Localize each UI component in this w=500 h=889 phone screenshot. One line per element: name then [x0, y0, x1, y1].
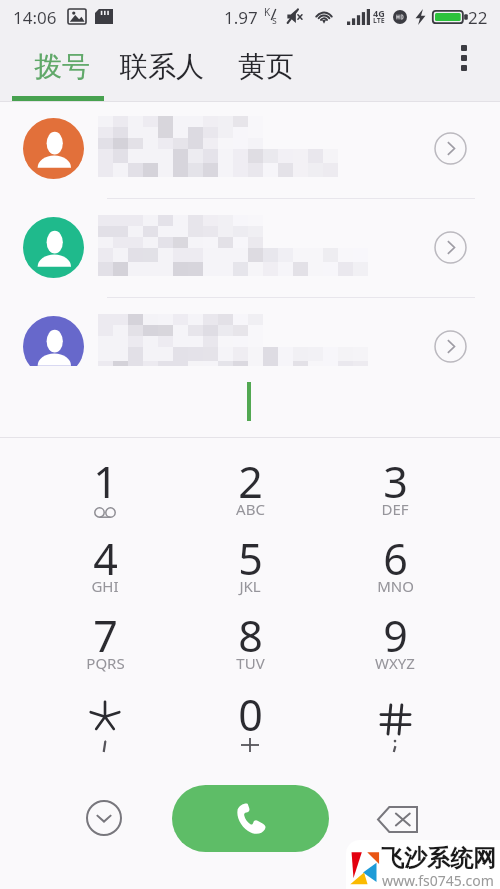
button[interactable]: Backspace	[371, 793, 423, 845]
button[interactable]: 7	[43, 600, 167, 674]
staticText: www.fs0745.com	[382, 871, 494, 889]
button[interactable]: 黄页	[236, 44, 296, 88]
button[interactable]: Contact details	[424, 320, 476, 366]
staticText: 0	[238, 685, 263, 744]
staticText: 9	[383, 606, 408, 665]
button[interactable]: Hide keypad	[79, 793, 128, 842]
button[interactable]: 联系人	[117, 44, 207, 88]
staticText: 联系人	[120, 49, 204, 84]
staticText: 5	[238, 529, 263, 588]
button[interactable]: Contact details	[0, 199, 500, 298]
button[interactable]: Contact details	[424, 221, 476, 273]
staticText: 1	[93, 452, 118, 511]
button[interactable]: 5	[188, 523, 312, 597]
button[interactable]: Contact details	[0, 298, 500, 366]
staticText: LTE	[373, 16, 385, 26]
staticText: 拨号	[34, 49, 90, 84]
button[interactable]: 3	[333, 446, 457, 520]
staticText: 14:06	[13, 6, 57, 29]
staticText: 22	[468, 6, 488, 29]
staticText: 3	[383, 452, 408, 511]
staticText: s	[272, 13, 277, 27]
button[interactable]: 4	[43, 523, 167, 597]
staticText: 7	[93, 606, 118, 665]
staticText: 飞沙系统网	[381, 844, 496, 873]
staticText: 1.97	[224, 6, 258, 29]
staticText: 黄页	[238, 49, 294, 84]
button[interactable]: Contact details	[424, 122, 476, 174]
button[interactable]: Contact details	[0, 100, 500, 199]
button[interactable]: More options	[440, 34, 488, 82]
staticText: TUV	[236, 653, 265, 673]
staticText: 6	[383, 529, 408, 588]
staticText: 4G	[373, 7, 385, 19]
staticText: GHI	[91, 576, 119, 596]
button[interactable]: 1	[43, 446, 167, 520]
button[interactable]: 8	[188, 600, 312, 674]
staticText: WXYZ	[375, 653, 415, 673]
staticText: 4	[93, 529, 118, 588]
button[interactable]	[43, 677, 167, 751]
button[interactable]: 2	[188, 446, 312, 520]
staticText: JKL	[239, 576, 261, 596]
button[interactable]: Call	[172, 785, 329, 852]
staticText: MNO	[377, 576, 414, 596]
button[interactable]	[333, 677, 457, 751]
staticText: DEF	[381, 499, 409, 519]
button[interactable]: 6	[333, 523, 457, 597]
button[interactable]: 0	[188, 677, 312, 751]
button[interactable]: 拨号	[32, 44, 92, 88]
button[interactable]: 9	[333, 600, 457, 674]
staticText: 8	[238, 606, 263, 665]
staticText: ABC	[236, 499, 265, 519]
staticText: 2	[238, 452, 263, 511]
staticText: PQRS	[86, 653, 125, 673]
staticText: K	[264, 5, 271, 19]
